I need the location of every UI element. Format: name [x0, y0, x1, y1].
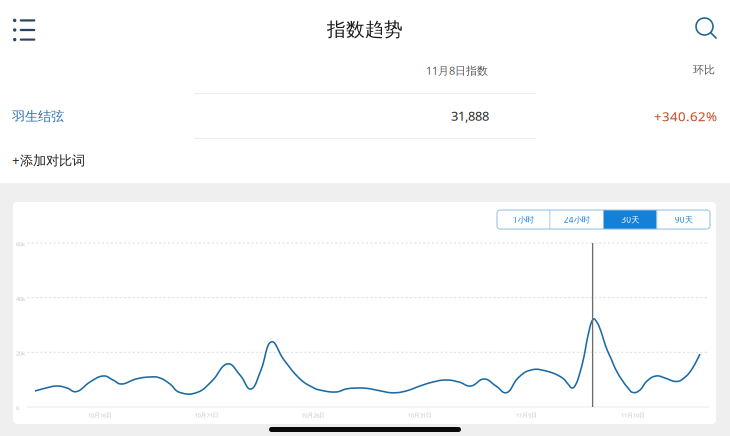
staticText: 24小时: [564, 214, 590, 225]
button[interactable]: +添加对比词: [6, 146, 91, 174]
staticText: 31,888: [451, 107, 489, 124]
staticText: 环比: [693, 63, 715, 77]
staticText: 20k: [16, 349, 25, 357]
staticText: 1小时: [513, 214, 534, 225]
staticText: 10月16日: [88, 411, 112, 419]
staticText: 10月21日: [195, 411, 219, 419]
staticText: 羽生结弦: [12, 108, 64, 125]
staticText: 90天: [675, 214, 693, 225]
button[interactable]: 30天: [604, 210, 656, 229]
button[interactable]: 90天: [657, 210, 710, 229]
staticText: 指数趋势: [327, 18, 403, 41]
staticText: 11月5日: [516, 411, 537, 419]
button[interactable]: 24小时: [550, 210, 603, 229]
staticText: 30天: [621, 214, 639, 225]
staticText: 11月8日指数: [426, 63, 488, 78]
staticText: 11月10日: [621, 411, 645, 419]
button[interactable]: Search: [690, 12, 723, 45]
staticText: +添加对比词: [12, 151, 85, 169]
staticText: 10月26日: [301, 411, 325, 419]
staticText: 60k: [16, 240, 25, 248]
button[interactable]: Menu: [7, 14, 42, 46]
staticText: 10月31日: [408, 411, 432, 419]
staticText: 0: [16, 404, 19, 412]
staticText: +340.62%: [654, 107, 717, 125]
staticText: 40k: [16, 295, 25, 303]
button[interactable]: 羽生结弦: [6, 103, 70, 130]
button[interactable]: 1小时: [497, 210, 549, 229]
